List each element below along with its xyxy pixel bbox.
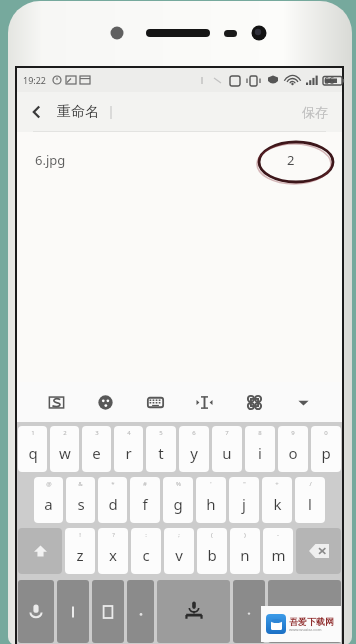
button[interactable]: 4 bbox=[114, 426, 143, 472]
staticText: x bbox=[109, 545, 117, 565]
staticText: & bbox=[78, 480, 83, 488]
button[interactable]: : bbox=[131, 528, 161, 574]
staticText: ! bbox=[79, 531, 81, 539]
staticText: # bbox=[143, 480, 147, 488]
button[interactable]: 1 bbox=[18, 426, 47, 472]
staticText: 重命名 bbox=[57, 103, 99, 121]
staticText: : bbox=[145, 531, 147, 539]
button[interactable]: / bbox=[295, 477, 325, 523]
staticText: l bbox=[308, 494, 312, 514]
staticText: n bbox=[240, 545, 250, 565]
button[interactable]: " bbox=[229, 477, 259, 523]
button[interactable]: ) bbox=[230, 528, 260, 574]
staticText: e bbox=[92, 443, 101, 463]
staticText: + bbox=[275, 480, 279, 488]
button[interactable]: @ bbox=[34, 477, 63, 523]
button[interactable]: 7 bbox=[212, 426, 242, 472]
button[interactable]: ' bbox=[196, 477, 226, 523]
staticText: ( bbox=[211, 531, 213, 539]
staticText: r bbox=[125, 443, 132, 463]
staticText: h bbox=[206, 494, 216, 514]
button[interactable]: ! bbox=[65, 528, 95, 574]
staticText: y bbox=[190, 443, 198, 463]
staticText: m bbox=[271, 545, 286, 565]
staticText: 6.jpg bbox=[35, 151, 66, 169]
button[interactable]: ; bbox=[164, 528, 194, 574]
button[interactable]: Collapse keyboard bbox=[286, 385, 320, 419]
staticText: 0 bbox=[324, 429, 328, 437]
button[interactable]: Enter bbox=[268, 580, 341, 643]
staticText: q bbox=[28, 443, 38, 463]
staticText: 2 bbox=[287, 151, 295, 169]
button[interactable]: 3 bbox=[82, 426, 111, 472]
button[interactable]: 9 bbox=[278, 426, 308, 472]
staticText: 1 bbox=[31, 429, 35, 437]
button[interactable]: % bbox=[163, 477, 193, 523]
staticText: ) bbox=[244, 531, 246, 539]
staticText: ' bbox=[210, 480, 212, 488]
button[interactable]: + bbox=[262, 477, 292, 523]
button[interactable]: Switch language bbox=[92, 580, 124, 643]
button[interactable]: Voice input bbox=[18, 580, 54, 643]
staticText: 19:22 bbox=[23, 74, 47, 86]
button[interactable]: 6 bbox=[179, 426, 209, 472]
staticText: f bbox=[142, 494, 148, 514]
button[interactable]: Comma bbox=[127, 580, 154, 643]
button[interactable]: 2 bbox=[50, 426, 79, 472]
staticText: 保存 bbox=[302, 104, 328, 120]
staticText: 66 bbox=[324, 74, 335, 86]
staticText: t bbox=[158, 443, 164, 463]
button[interactable]: - bbox=[263, 528, 293, 574]
button[interactable]: Move cursor bbox=[187, 385, 221, 419]
staticText: www.wuaixz.com bbox=[289, 627, 322, 632]
button[interactable]: Symbols bbox=[57, 580, 89, 643]
staticText: b bbox=[207, 545, 217, 565]
staticText: d bbox=[108, 494, 118, 514]
staticText: j bbox=[242, 494, 246, 514]
staticText: 2 bbox=[63, 429, 67, 437]
button[interactable]: Emoji bbox=[88, 385, 122, 419]
staticText: 3 bbox=[95, 429, 99, 437]
staticText: 4 bbox=[127, 429, 131, 437]
staticText: 5 bbox=[159, 429, 163, 437]
button[interactable]: ? bbox=[98, 528, 128, 574]
staticText: z bbox=[76, 545, 84, 565]
staticText: ; bbox=[178, 531, 180, 539]
staticText: % bbox=[176, 480, 181, 488]
staticText: 7 bbox=[225, 429, 229, 437]
staticText: s bbox=[77, 494, 85, 514]
button[interactable]: Period bbox=[233, 580, 265, 643]
staticText: 6 bbox=[192, 429, 196, 437]
button[interactable]: 保存 bbox=[288, 92, 342, 132]
button[interactable]: & bbox=[66, 477, 95, 523]
staticText: - bbox=[277, 531, 279, 539]
button[interactable]: # bbox=[130, 477, 160, 523]
staticText: ? bbox=[112, 531, 115, 539]
button[interactable]: Backspace bbox=[296, 528, 341, 574]
staticText: v bbox=[175, 545, 183, 565]
staticText: 8 bbox=[258, 429, 262, 437]
staticText: c bbox=[142, 545, 150, 565]
button[interactable]: 8 bbox=[245, 426, 275, 472]
staticText: g bbox=[173, 494, 183, 514]
staticText: k bbox=[273, 494, 282, 514]
button[interactable]: 0 bbox=[311, 426, 341, 472]
button[interactable]: ( bbox=[197, 528, 227, 574]
button[interactable]: * bbox=[98, 477, 127, 523]
button[interactable]: Back bbox=[17, 92, 57, 132]
staticText: 吾爱下载网 bbox=[289, 616, 334, 627]
staticText: / bbox=[309, 480, 312, 488]
button[interactable]: 6.jpg bbox=[17, 132, 342, 188]
staticText: @ bbox=[46, 480, 52, 488]
staticText: " bbox=[243, 480, 246, 488]
staticText: i bbox=[258, 443, 262, 463]
button[interactable]: Shift bbox=[18, 528, 62, 574]
button[interactable]: Sogou input bbox=[39, 385, 73, 419]
staticText: o bbox=[288, 443, 298, 463]
button[interactable]: 5 bbox=[146, 426, 176, 472]
button[interactable]: Settings bbox=[237, 385, 271, 419]
button[interactable]: Keyboard layout bbox=[138, 385, 172, 419]
staticText: a bbox=[44, 494, 53, 514]
staticText: * bbox=[111, 480, 115, 488]
button[interactable]: Space bbox=[157, 580, 230, 643]
